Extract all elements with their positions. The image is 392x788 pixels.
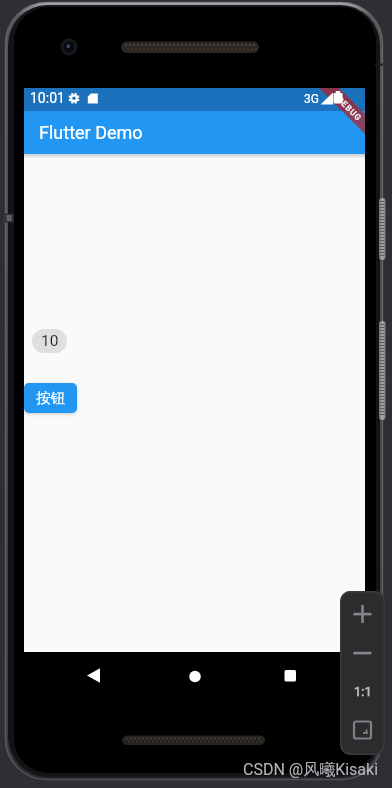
staticText: CSDN @风曦Kisaki xyxy=(243,760,379,780)
staticText: 3G xyxy=(304,92,319,106)
button[interactable]: 1:1 xyxy=(340,684,385,699)
button[interactable] xyxy=(346,637,379,670)
button[interactable] xyxy=(346,715,379,748)
button[interactable] xyxy=(346,597,379,630)
button[interactable]: 10 xyxy=(32,329,67,353)
staticText: 10 xyxy=(41,332,59,350)
staticText: 按钮 xyxy=(36,389,65,407)
button[interactable] xyxy=(137,652,251,700)
button[interactable] xyxy=(251,652,365,700)
staticText: Flutter Demo xyxy=(39,122,143,143)
button[interactable] xyxy=(24,652,137,700)
staticText: 10:01 xyxy=(30,90,65,106)
button[interactable]: 按钮 xyxy=(24,383,77,413)
staticText: DEBUG xyxy=(335,95,364,123)
staticText: 1:1 xyxy=(354,684,372,699)
